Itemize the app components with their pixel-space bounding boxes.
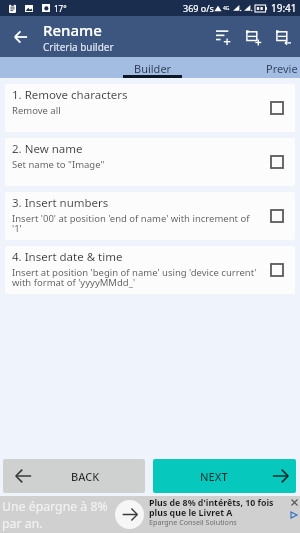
button[interactable]: Select criterion: [265, 258, 289, 282]
staticText: Epargne Conseil Solutions: [149, 517, 237, 527]
staticText: 19:41: [271, 1, 297, 15]
button[interactable]: 3. Insert numbers: [5, 192, 295, 240]
staticText: Preview: [266, 61, 300, 76]
staticText: 4G: [223, 5, 230, 12]
button[interactable]: Preview: [266, 57, 300, 78]
button[interactable]: 2. New name: [5, 138, 295, 186]
button[interactable]: Builder: [123, 57, 182, 78]
staticText: Rename: [43, 20, 102, 40]
button[interactable]: Back: [0, 18, 41, 56]
staticText: Remove all: [12, 104, 61, 117]
staticText: Insert '00' at position 'end of name' wi…: [12, 212, 250, 235]
other: Ad info: [290, 511, 298, 519]
button[interactable]: Select criterion: [265, 96, 289, 120]
staticText: Plus de 8% d'intérêts, 10 fois: [149, 497, 274, 509]
staticText: 3. Insert numbers: [12, 195, 109, 211]
button[interactable]: Learn more: [115, 500, 144, 529]
staticText: 17°: [54, 3, 67, 14]
staticText: Set name to "Image": [12, 158, 105, 171]
other: Close ad: [291, 499, 298, 506]
staticText: 4. Insert date & time: [12, 249, 123, 265]
staticText: 1. Remove characters: [12, 87, 128, 103]
button[interactable]: Add criteria: [208, 18, 238, 56]
button[interactable]: Une épargne à 8%: [0, 496, 300, 533]
button[interactable]: 1. Remove characters: [5, 84, 295, 132]
button[interactable]: Add field: [238, 18, 268, 56]
staticText: 2. New name: [12, 141, 83, 157]
staticText: Une épargne à 8%: [2, 498, 108, 515]
button[interactable]: NEXT: [153, 459, 296, 493]
button[interactable]: BACK: [3, 459, 145, 493]
staticText: BACK: [71, 469, 100, 484]
staticText: par an.: [2, 515, 43, 532]
staticText: Insert at position 'begin of name' using…: [12, 266, 257, 289]
staticText: plus que le Livret A: [149, 507, 233, 519]
button[interactable]: Load preset: [268, 18, 298, 56]
staticText: NEXT: [200, 469, 228, 484]
button[interactable]: 4. Insert date & time: [5, 246, 295, 294]
staticText: Criteria builder: [43, 40, 114, 54]
button[interactable]: Select criterion: [265, 150, 289, 174]
staticText: 369 o/s: [183, 2, 214, 14]
button[interactable]: Select criterion: [265, 204, 289, 228]
staticText: Builder: [134, 61, 172, 76]
